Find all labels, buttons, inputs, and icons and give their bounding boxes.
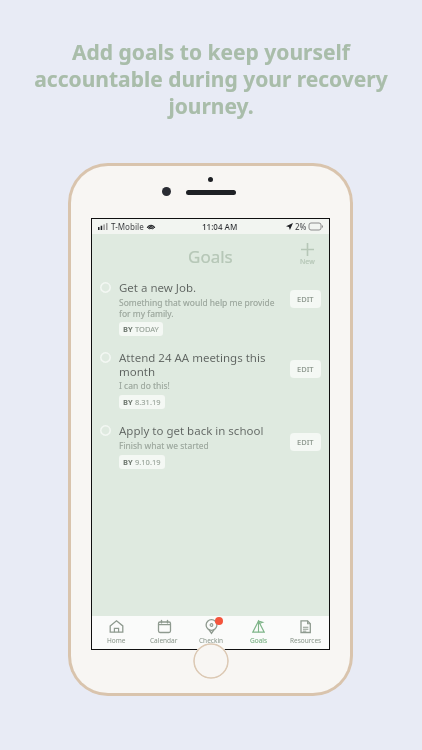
button[interactable]: EDIT [290, 360, 321, 378]
staticText: Goals [188, 245, 233, 268]
staticText: BY [123, 397, 133, 407]
button[interactable]: EDIT [290, 290, 321, 308]
button[interactable]: Resources [282, 616, 329, 649]
staticText: 8.31.19 [135, 397, 161, 407]
staticText: Add goals to keep yourself accountable d… [22, 38, 400, 120]
button[interactable]: New goal [296, 240, 319, 269]
staticText: EDIT [297, 294, 314, 304]
staticText: EDIT [297, 437, 314, 447]
staticText: New [300, 257, 315, 267]
button[interactable]: Get a new Job. [92, 274, 329, 340]
staticText: Something that would help me provide for… [119, 297, 284, 319]
button[interactable]: Goals [235, 616, 282, 649]
button[interactable]: Checkin [188, 616, 235, 649]
button[interactable]: Apply to get back in school [92, 413, 329, 473]
staticText: Get a new Job. [119, 280, 197, 296]
staticText: TODAY [135, 324, 159, 334]
button[interactable]: Home [92, 616, 140, 649]
staticText: Resources [290, 636, 322, 645]
staticText: Attend 24 AA meetings this month [119, 350, 284, 379]
staticText: BY [123, 457, 133, 467]
staticText: Checkin [199, 636, 224, 645]
staticText: 9.10.19 [135, 457, 161, 467]
button[interactable]: Attend 24 AA meetings this month [92, 340, 329, 413]
staticText: EDIT [297, 364, 314, 374]
button[interactable]: EDIT [290, 433, 321, 451]
staticText: I can do this! [119, 380, 170, 392]
staticText: Calendar [150, 636, 178, 645]
staticText: T-Mobile [111, 221, 144, 232]
staticText: Finish what we started [119, 440, 209, 452]
staticText: BY [123, 324, 133, 334]
staticText: Goals [250, 636, 268, 645]
button[interactable]: Calendar [140, 616, 188, 649]
staticText: 11:04 AM [202, 221, 238, 232]
staticText: Apply to get back in school [119, 423, 264, 439]
staticText: 2% [295, 221, 307, 232]
staticText: Home [107, 636, 126, 645]
